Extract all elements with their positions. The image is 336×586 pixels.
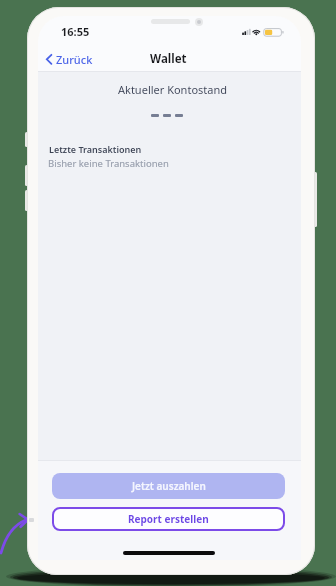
staticText: Wallet <box>150 51 187 67</box>
staticText: 16:55 <box>61 24 90 37</box>
button[interactable]: Zurück <box>43 50 103 68</box>
staticText: Bisher keine Transaktionen <box>48 157 169 168</box>
button[interactable]: Jetzt auszahlen <box>52 473 285 499</box>
staticText: Jetzt auszahlen <box>132 479 206 493</box>
button[interactable]: Report erstellen <box>52 507 285 531</box>
staticText: Zurück <box>56 52 93 67</box>
staticText: Letzte Transaktionen <box>49 143 142 154</box>
staticText: Aktueller Kontostand <box>118 82 228 96</box>
staticText: Report erstellen <box>128 512 209 526</box>
